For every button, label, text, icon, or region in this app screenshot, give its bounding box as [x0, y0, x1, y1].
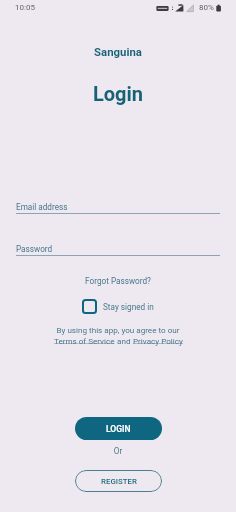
button[interactable]: Terms of Service [54, 336, 115, 345]
staticText: Password [16, 244, 53, 254]
staticText: Login [0, 82, 236, 105]
button[interactable]: Stay signed in [82, 299, 154, 314]
button[interactable]: Forgot Password? [0, 276, 236, 286]
button[interactable]: Privacy Policy [133, 336, 183, 345]
staticText: REGISTER [101, 477, 137, 486]
staticText: By using this app, you agree to our [0, 325, 236, 334]
staticText: Sanguina [0, 45, 236, 58]
staticText: Email address [16, 202, 68, 212]
staticText: and [115, 336, 133, 345]
staticText: 10:05 [15, 3, 35, 12]
staticText: 80% [199, 3, 214, 12]
staticText: Stay signed in [103, 302, 154, 312]
button[interactable]: LOGIN [75, 417, 162, 440]
staticText: Or [0, 446, 236, 456]
button[interactable]: REGISTER [75, 470, 162, 492]
staticText: LOGIN [106, 424, 131, 434]
